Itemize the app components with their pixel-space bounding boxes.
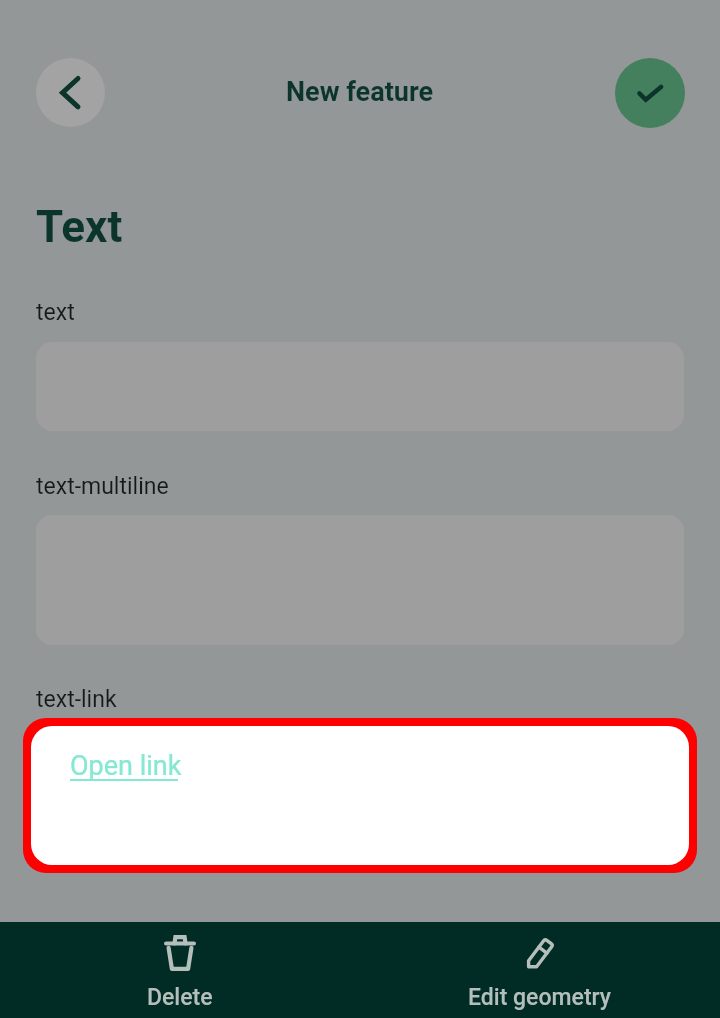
button[interactable]: Delete — [0, 922, 360, 1018]
staticText: Edit geometry — [468, 984, 612, 1011]
button[interactable]: Edit geometry — [360, 922, 720, 1018]
button[interactable]: Save — [615, 58, 685, 128]
staticText: New feature — [286, 76, 434, 108]
button[interactable]: Back — [36, 58, 105, 127]
staticText: text-multiline — [36, 473, 169, 500]
staticText: text-link — [36, 686, 117, 713]
staticText: text — [36, 299, 75, 326]
staticText: Open link — [70, 750, 182, 782]
staticText: Text — [36, 201, 123, 253]
button[interactable]: Open link — [23, 718, 697, 873]
staticText: Delete — [147, 984, 213, 1011]
